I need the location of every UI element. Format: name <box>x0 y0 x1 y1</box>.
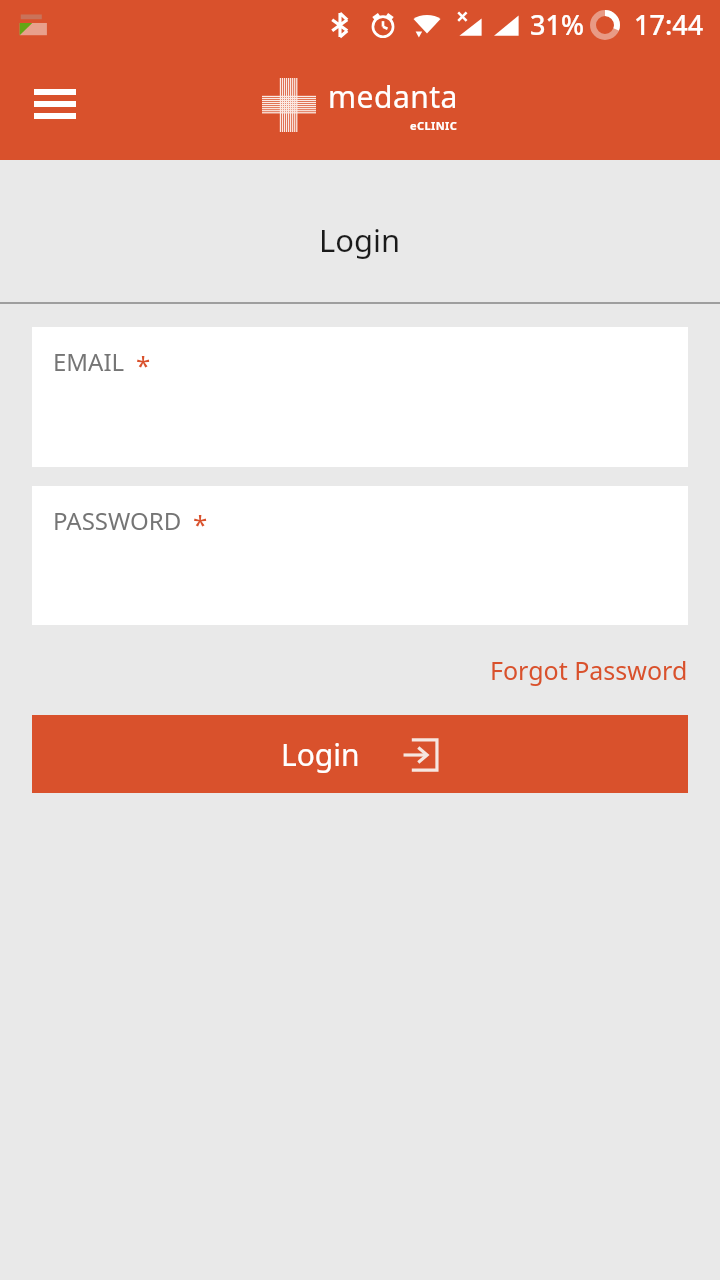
staticText: Login <box>319 219 401 261</box>
staticText: 31% <box>530 6 584 43</box>
button[interactable]: EMAIL <box>32 327 688 467</box>
button[interactable]: PASSWORD <box>32 486 688 625</box>
staticText: * <box>136 347 151 382</box>
staticText: medanta <box>328 76 458 117</box>
button[interactable]: Open navigation menu <box>22 71 88 137</box>
button[interactable]: Login <box>32 715 688 793</box>
staticText: Login <box>281 734 360 775</box>
staticText: EMAIL <box>53 345 125 378</box>
button[interactable]: Forgot Password <box>458 647 720 693</box>
staticText: 17:44 <box>634 6 704 43</box>
staticText: eCLINIC <box>410 118 458 133</box>
staticText: Forgot Password <box>490 653 688 687</box>
staticText: PASSWORD <box>53 504 182 537</box>
staticText: * <box>193 506 208 541</box>
